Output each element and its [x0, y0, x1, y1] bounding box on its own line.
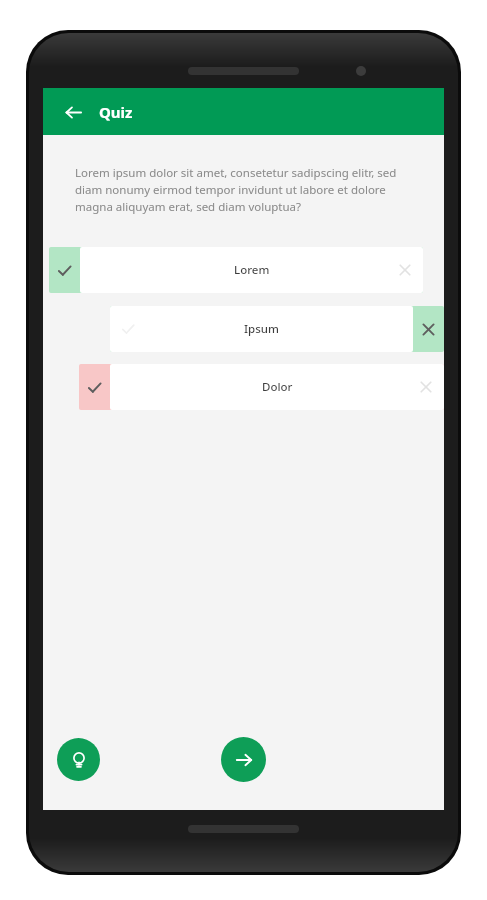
staticText: Lorem [234, 262, 270, 278]
button[interactable]: Hint [57, 738, 100, 781]
button[interactable]: Lorem [49, 247, 423, 293]
staticText: Quiz [99, 102, 133, 122]
staticText: Ipsum [244, 321, 279, 337]
button[interactable]: Ipsum [110, 306, 444, 352]
button[interactable]: Dolor [79, 364, 444, 410]
staticText: Lorem ipsum dolor sit amet, consetetur s… [75, 165, 412, 215]
button[interactable]: Next question [221, 737, 266, 782]
staticText: Dolor [262, 379, 293, 395]
button[interactable]: Back [55, 94, 91, 130]
